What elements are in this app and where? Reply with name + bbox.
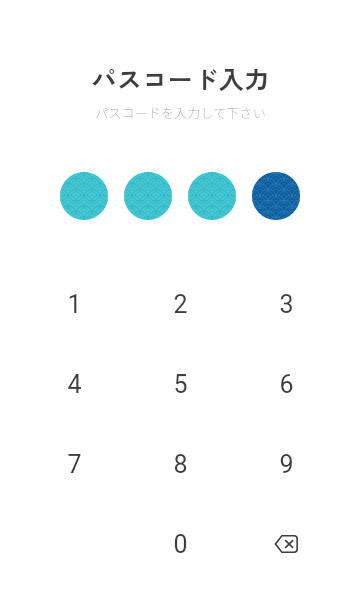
button[interactable]: 3 xyxy=(233,264,339,344)
staticText: 4 xyxy=(67,370,82,399)
button[interactable]: Backspace xyxy=(233,504,339,584)
staticText: 7 xyxy=(67,450,82,479)
button[interactable]: 5 xyxy=(127,344,233,424)
staticText: 6 xyxy=(279,370,294,399)
staticText: 1 xyxy=(67,290,82,319)
staticText: 0 xyxy=(173,530,188,559)
staticText: 2 xyxy=(173,290,188,319)
staticText: 9 xyxy=(279,450,294,479)
button[interactable]: 4 xyxy=(21,344,127,424)
button[interactable]: 1 xyxy=(21,264,127,344)
button[interactable]: 8 xyxy=(127,424,233,504)
button[interactable]: 2 xyxy=(127,264,233,344)
button[interactable]: 7 xyxy=(21,424,127,504)
button[interactable]: 9 xyxy=(233,424,339,504)
button[interactable]: 6 xyxy=(233,344,339,424)
staticText: 5 xyxy=(173,370,188,399)
staticText: パスコード入力 xyxy=(91,60,270,96)
staticText: パスコードを入力して下さい xyxy=(95,103,266,122)
button[interactable]: 0 xyxy=(127,504,233,584)
staticText: 3 xyxy=(279,290,294,319)
staticText: 8 xyxy=(173,450,188,479)
